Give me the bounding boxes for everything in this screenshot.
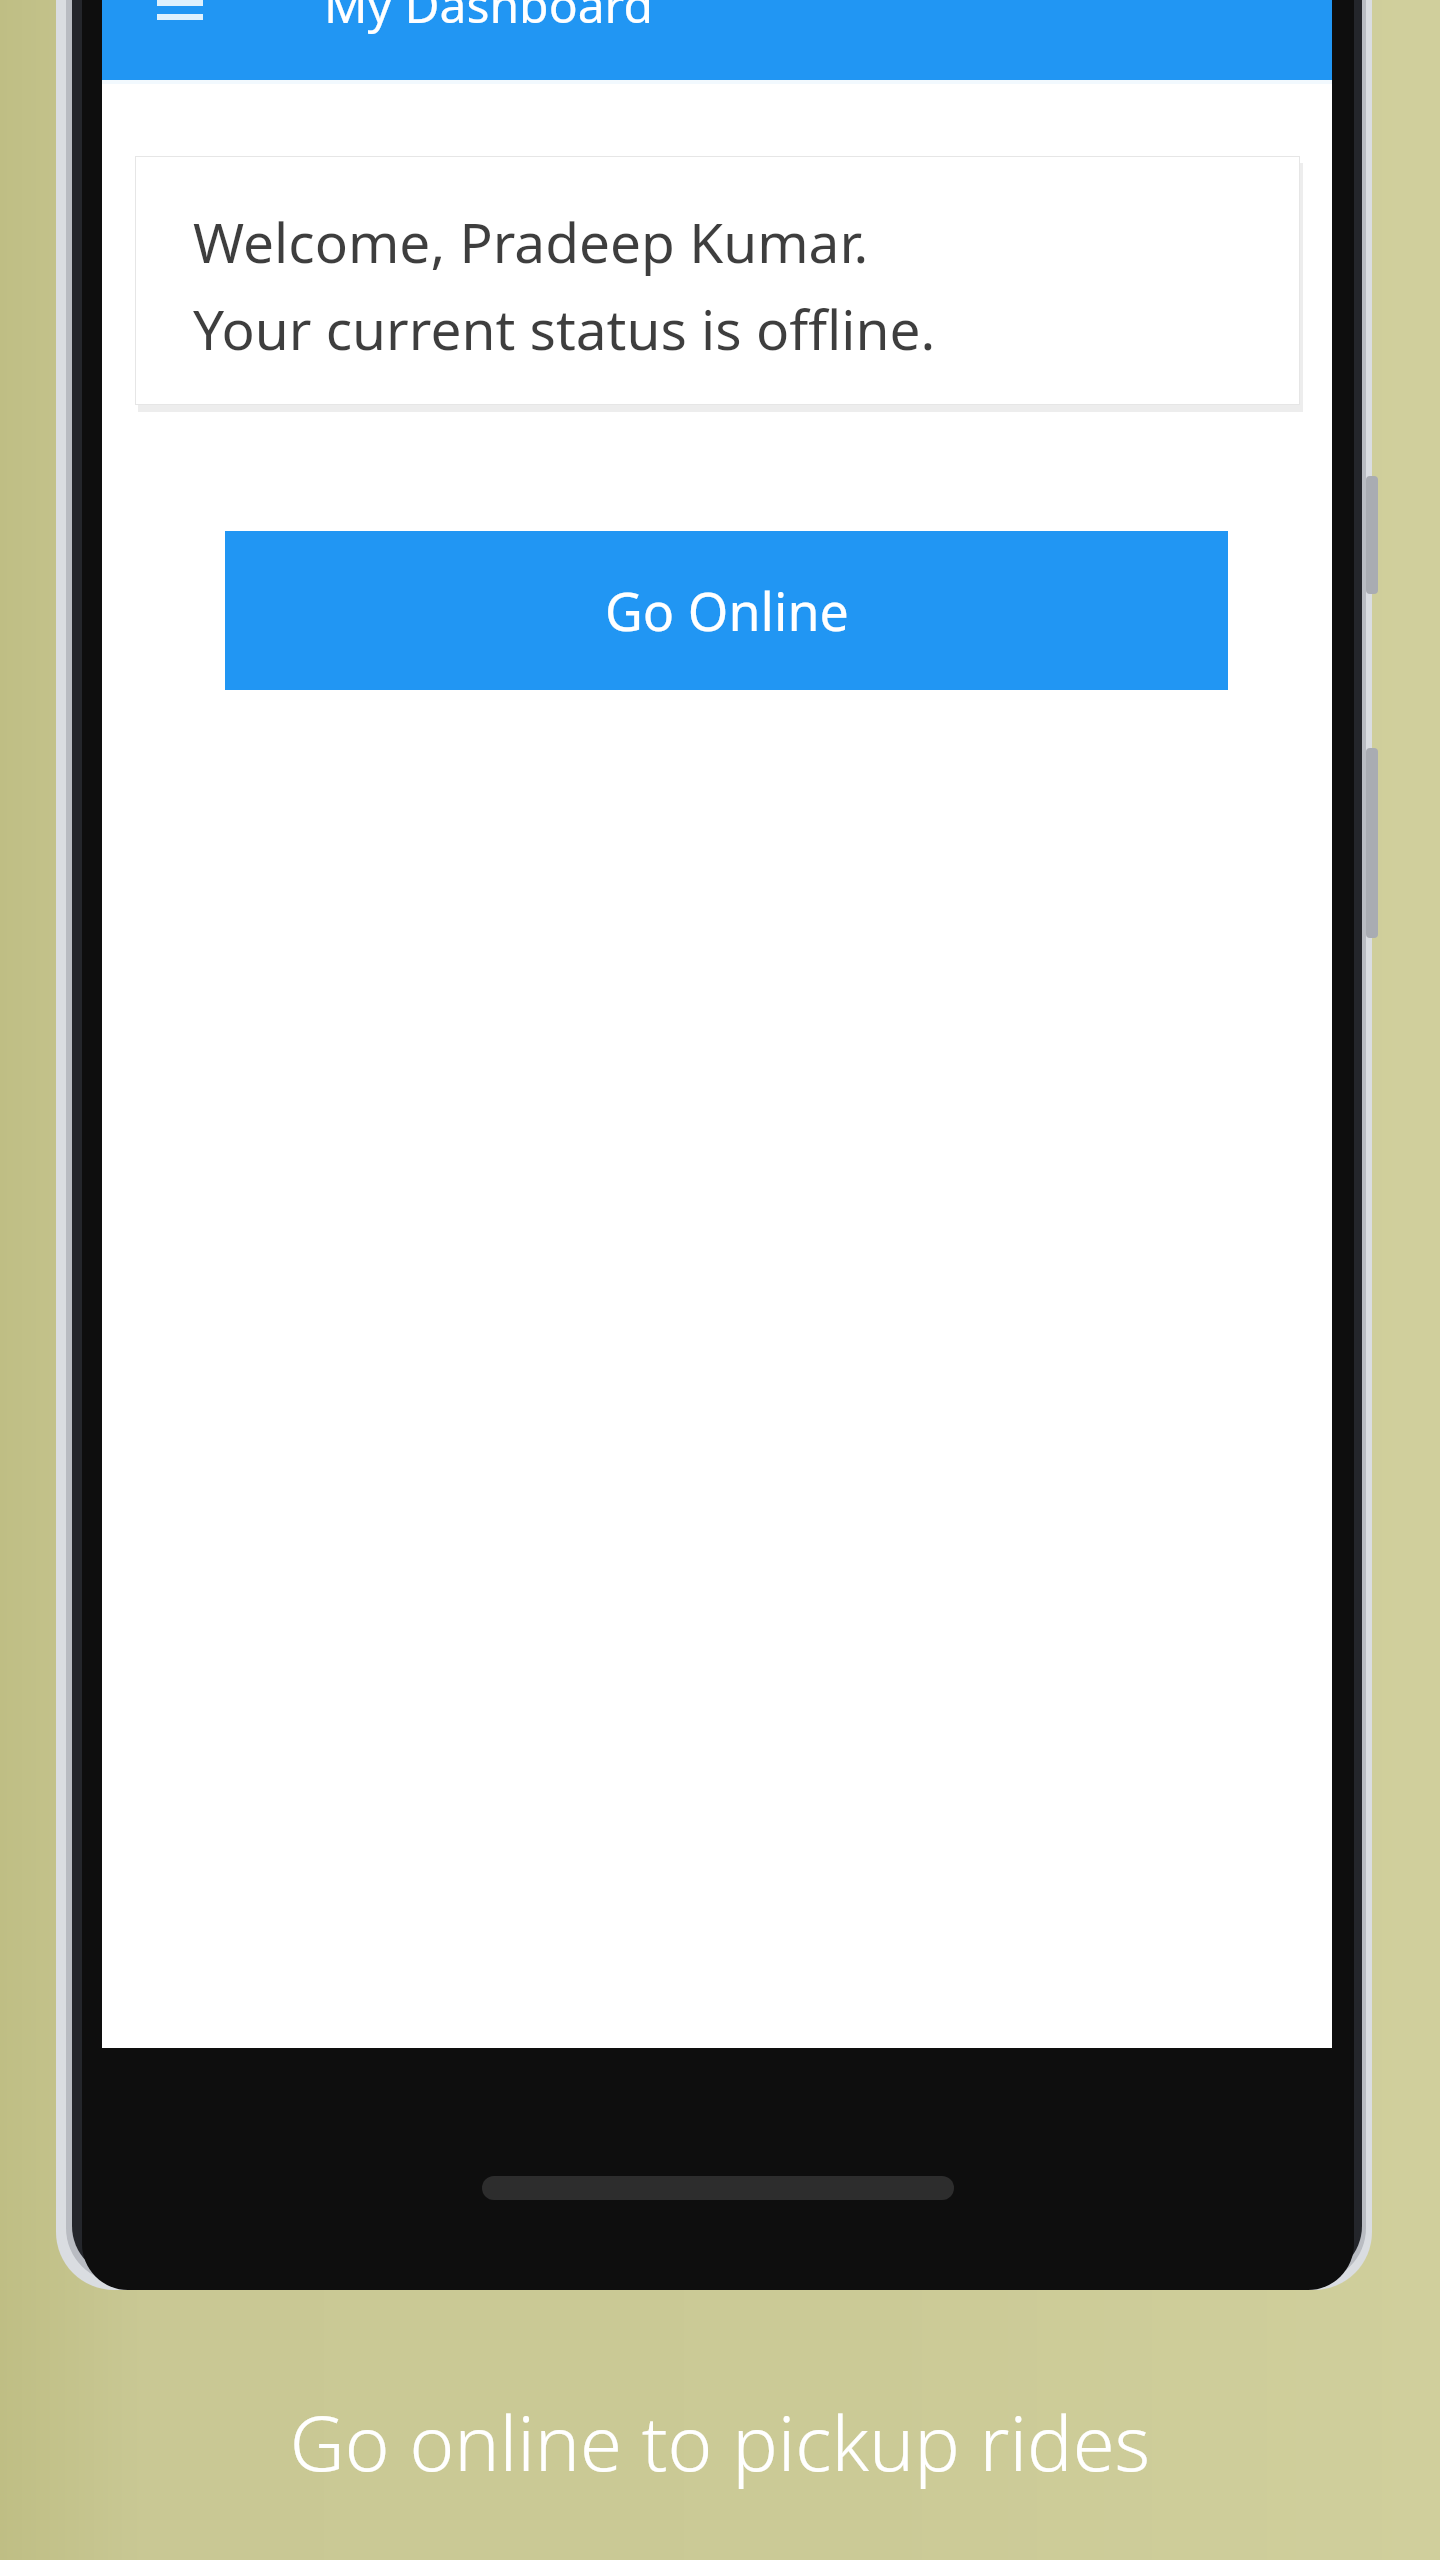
staticText: Welcome, Pradeep Kumar.: [193, 204, 869, 279]
button[interactable]: Go Online: [225, 531, 1228, 690]
staticText: My Dashboard: [324, 0, 653, 37]
staticText: Go online to pickup rides: [0, 2390, 1440, 2494]
button[interactable]: Open navigation menu: [132, 0, 228, 46]
staticText: Your current status is offline.: [193, 291, 936, 366]
staticText: Go Online: [605, 575, 849, 646]
button[interactable]: Welcome, Pradeep Kumar.: [135, 156, 1300, 405]
